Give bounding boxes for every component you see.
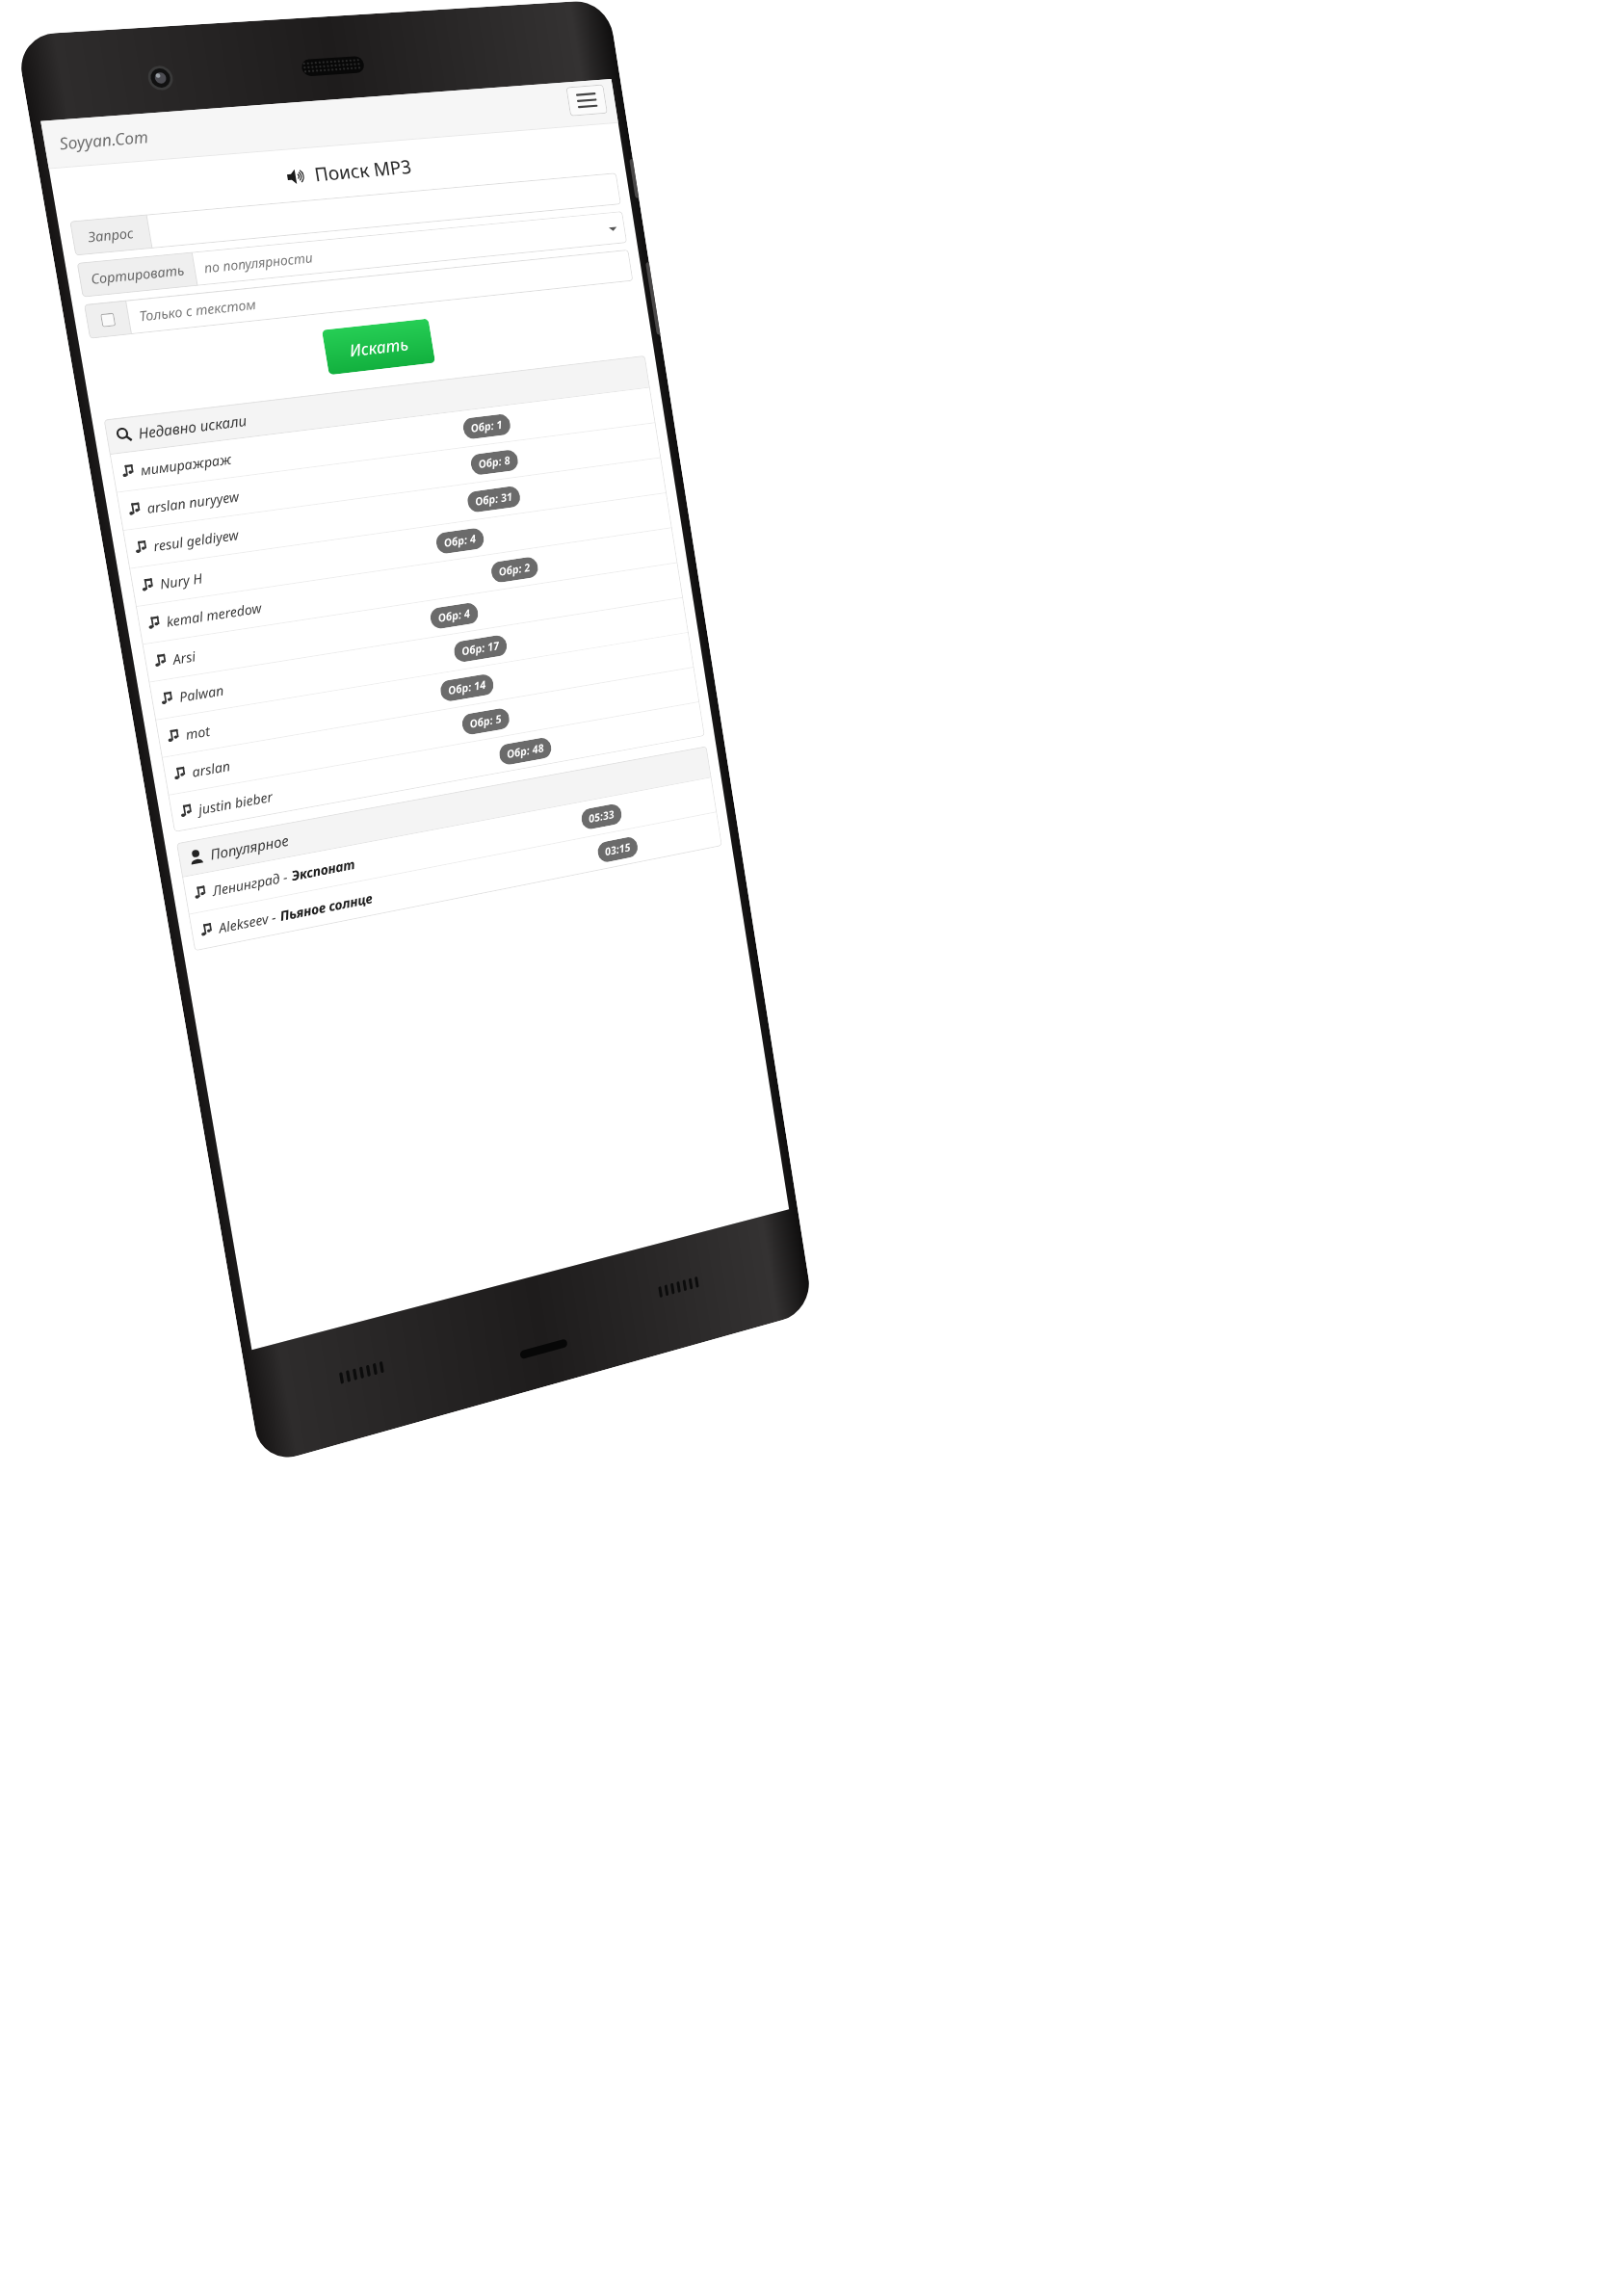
staticText: Обр: 4 [437,606,472,626]
button[interactable]: Запрос [70,173,621,256]
button[interactable]: Nury H [129,493,672,606]
button[interactable]: kemal meredow [136,528,678,644]
staticText: Запрос [86,224,135,246]
button[interactable]: resul geldiyew [123,458,667,568]
button[interactable]: Arsi [142,563,683,682]
staticText: Обр: 31 [474,489,514,509]
staticText: Обр: 8 [477,453,512,472]
staticText: Обр: 1 [469,417,504,436]
button[interactable]: Искать [322,318,435,375]
staticText: Soyyan.Com [57,126,150,155]
staticText: 05:33 [587,807,616,826]
button[interactable]: Только с текстом [84,249,633,339]
staticText: 03:15 [604,840,632,859]
button[interactable]: arslan [162,668,699,795]
staticText: Только с текстом [138,295,257,325]
staticText: Palwan [178,681,226,706]
staticText: kemal meredow [165,599,263,631]
button[interactable]: Alekseev - [189,812,722,951]
staticText: по популярности [203,249,314,277]
staticText: Обр: 5 [469,711,503,732]
staticText: Обр: 4 [443,531,478,551]
staticText: Обр: 14 [447,677,487,699]
staticText: Экспонат [290,855,357,885]
staticText: Обр: 17 [460,638,501,659]
staticText: Пьяное солнце [279,889,374,925]
staticText: Поиск MP3 [313,154,414,187]
staticText: Обр: 48 [506,740,545,762]
staticText: Ленинград - [211,867,293,900]
button[interactable]: arslan nuryyew [116,423,661,530]
staticText: мимиражраж [139,450,233,479]
staticText: Nury H [158,569,204,593]
staticText: Alekseev - [217,907,282,937]
staticText: arslan [191,757,232,781]
button[interactable]: Ленинград - [182,778,717,914]
button[interactable]: justin bieber [168,702,705,832]
staticText: mot [184,722,211,744]
staticText: Обр: 2 [498,560,532,580]
button[interactable]: Palwan [149,598,689,720]
staticText: resul geldiyew [152,526,240,555]
staticText: Популярное [209,830,290,864]
staticText: Arsi [171,647,198,668]
staticText: Недавно искали [137,410,249,443]
staticText: arslan nuryyew [146,487,241,517]
button[interactable]: мимиражраж [110,388,655,492]
button[interactable]: mot [155,633,694,757]
staticText: justin bieber [197,788,274,818]
button[interactable]: Menu [566,84,608,116]
button[interactable]: Сортировать [77,211,627,297]
staticText: Искать [348,333,410,362]
staticText: Сортировать [89,261,186,288]
